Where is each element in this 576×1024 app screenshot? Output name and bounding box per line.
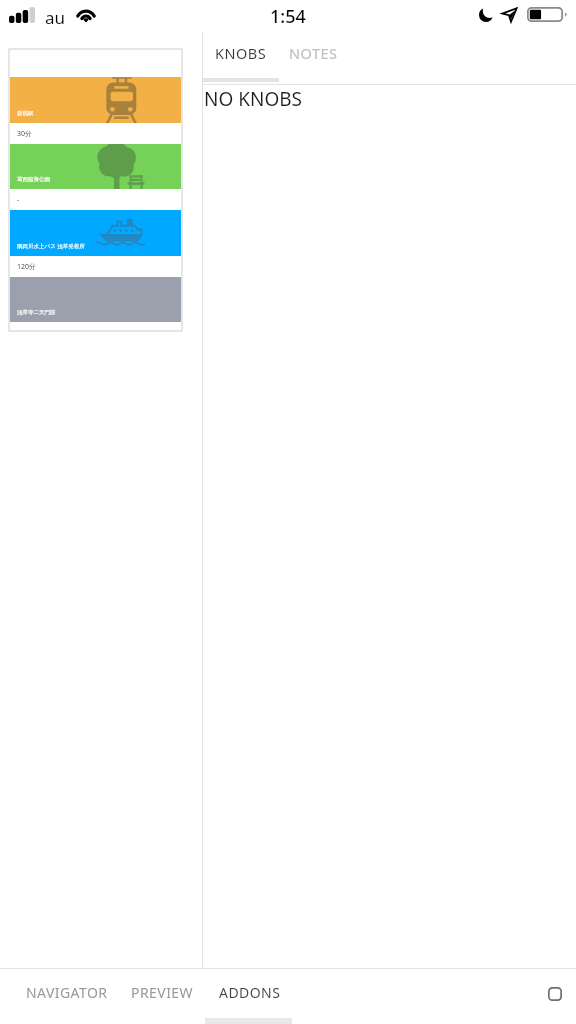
button[interactable]: Do not disturb <box>477 5 495 23</box>
staticText: PREVIEW <box>131 983 194 1002</box>
staticText: 30分 <box>17 129 33 139</box>
button[interactable]: 120分 <box>10 256 181 277</box>
button[interactable]: PREVIEW <box>119 969 206 1024</box>
staticText: 葛西臨海公園 <box>17 176 50 183</box>
staticText: au <box>45 6 66 29</box>
staticText: KNOBS <box>215 43 267 63</box>
button[interactable]: Toggle fullscreen <box>548 987 562 1001</box>
button[interactable]: 葛西臨海公園 <box>10 144 181 189</box>
staticText: NO KNOBS <box>204 86 303 112</box>
button[interactable]: NOTES <box>277 31 350 82</box>
button[interactable]: 隅田川水上バス 浅草発着所 <box>10 210 181 256</box>
staticText: 隅田川水上バス 浅草発着所 <box>17 242 85 250</box>
button[interactable]: 浅草寺二天門前 <box>10 277 181 322</box>
button[interactable]: KNOBS <box>203 31 279 82</box>
staticText: NAVIGATOR <box>26 983 108 1002</box>
staticText: ADDONS <box>219 983 281 1002</box>
staticText: 新宿駅 <box>17 110 34 117</box>
button[interactable]: NAVIGATOR <box>14 969 120 1024</box>
staticText: 1:54 <box>270 4 306 29</box>
staticText: NOTES <box>289 43 338 63</box>
staticText: 浅草寺二天門前 <box>17 309 56 316</box>
button[interactable]: ADDONS <box>207 969 293 1024</box>
button[interactable]: 新宿駅 <box>10 77 181 123</box>
staticText: - <box>17 195 20 205</box>
staticText: 120分 <box>17 262 37 272</box>
button[interactable]: 30分 <box>10 123 181 144</box>
